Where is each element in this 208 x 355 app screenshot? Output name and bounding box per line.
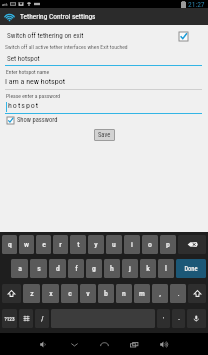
staticText: b — [104, 289, 108, 298]
staticText: Save — [98, 131, 111, 139]
button[interactable]: o — [142, 235, 158, 254]
button[interactable]: Recents — [124, 334, 144, 354]
staticText: i — [131, 240, 133, 249]
button[interactable]: Shift — [2, 284, 21, 303]
button[interactable]: Done — [176, 259, 206, 278]
button[interactable]: c — [61, 284, 78, 303]
button[interactable]: ' — [157, 309, 170, 328]
staticText: c — [68, 289, 72, 298]
button[interactable]: u — [106, 235, 122, 254]
button[interactable]: Shift — [188, 284, 206, 303]
staticText: h — [110, 264, 114, 273]
staticText: ?123 — [4, 316, 15, 322]
button[interactable]: I am a new hotspot — [0, 77, 208, 89]
button[interactable]: p — [160, 235, 176, 254]
staticText: Tethering Control settings — [20, 12, 96, 21]
staticText: w — [24, 240, 29, 249]
button[interactable]: q — [2, 235, 17, 254]
button[interactable]: Tethering — [0, 8, 208, 25]
staticText: y — [94, 240, 98, 249]
button[interactable]: v — [80, 284, 96, 303]
staticText: j — [129, 264, 131, 273]
button[interactable]: e — [36, 235, 51, 254]
button[interactable]: / — [35, 309, 49, 328]
button[interactable]: hotspot — [0, 101, 208, 114]
staticText: hotspot — [8, 101, 40, 110]
staticText: a — [18, 264, 22, 273]
button[interactable]: . — [170, 284, 186, 303]
button[interactable]: h — [104, 259, 120, 278]
staticText: r — [59, 240, 62, 249]
staticText: k — [146, 264, 150, 273]
staticText: z — [30, 289, 34, 298]
staticText: Set hotspot — [7, 54, 40, 62]
staticText: d — [56, 264, 60, 273]
staticText: x — [49, 289, 53, 298]
button[interactable]: - — [172, 309, 185, 328]
staticText: Enter hotspot name — [6, 69, 50, 76]
button[interactable]: i — [124, 235, 140, 254]
staticText: I am a new hotspot — [5, 77, 66, 86]
button[interactable]: Checkbox — [7, 117, 14, 124]
staticText: s — [37, 264, 41, 273]
button[interactable]: Home — [94, 334, 114, 354]
staticText: Show password — [17, 116, 58, 124]
button[interactable]: j — [122, 259, 138, 278]
button[interactable]: Settings — [19, 309, 33, 328]
button[interactable]: b — [98, 284, 114, 303]
button[interactable]: a — [11, 259, 28, 278]
button[interactable]: Voice input — [187, 309, 206, 328]
button[interactable]: f — [68, 259, 84, 278]
button[interactable]: x — [42, 284, 59, 303]
staticText: wifi — [2, 2, 8, 7]
staticText: t — [77, 240, 80, 249]
button[interactable]: Save — [94, 129, 115, 141]
button[interactable]: w — [19, 235, 34, 254]
staticText: , — [159, 289, 161, 298]
button[interactable]: s — [30, 259, 47, 278]
staticText: / — [41, 315, 44, 323]
button[interactable]: n — [116, 284, 132, 303]
button[interactable]: t — [70, 235, 86, 254]
staticText: Switch off all active tether interfaces … — [5, 44, 128, 51]
button[interactable]: m — [134, 284, 150, 303]
button[interactable]: Backspace — [178, 235, 206, 254]
staticText: l — [165, 264, 167, 273]
button[interactable]: d — [49, 259, 66, 278]
button[interactable]: r — [53, 235, 68, 254]
button[interactable]: Volume down — [34, 334, 54, 354]
button[interactable]: g — [86, 259, 102, 278]
button[interactable]: z — [23, 284, 40, 303]
button[interactable]: y — [88, 235, 104, 254]
staticText: n — [122, 289, 126, 298]
staticText: v — [86, 289, 90, 298]
other: Tethering — [3, 10, 16, 23]
staticText: . — [177, 289, 180, 298]
staticText: q — [8, 240, 12, 249]
staticText: o — [148, 240, 152, 249]
staticText: - — [178, 316, 180, 322]
button[interactable]: k — [140, 259, 156, 278]
staticText: Please enter a password — [6, 93, 61, 100]
staticText: f — [75, 264, 78, 273]
button[interactable]: l — [158, 259, 174, 278]
button[interactable]: Volume up — [154, 334, 174, 354]
button[interactable]: Back — [64, 334, 84, 354]
button[interactable]: Checkbox — [179, 32, 188, 41]
staticText: Done — [184, 265, 198, 273]
staticText: u — [112, 240, 116, 249]
button[interactable]: , — [152, 284, 168, 303]
staticText: p — [166, 240, 170, 249]
button[interactable]: ?123 — [2, 309, 17, 328]
staticText: ' — [163, 316, 164, 322]
button[interactable]: Checkbox — [7, 116, 58, 124]
staticText: 21:27 — [188, 0, 205, 8]
staticText: m — [139, 289, 145, 298]
staticText: g — [92, 264, 96, 273]
staticText: e — [42, 240, 46, 249]
staticText: Switch off tethering on exit — [7, 31, 84, 39]
button[interactable]: Switch off tethering on exit — [0, 30, 208, 50]
